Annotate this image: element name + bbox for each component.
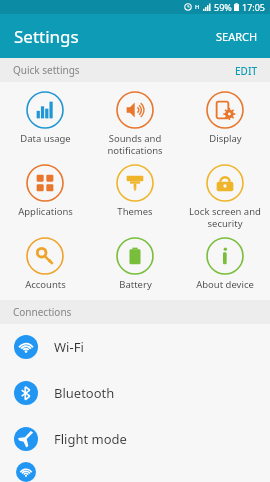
button[interactable]: Flight mode [0, 416, 270, 462]
button[interactable]: Data usage [0, 87, 90, 149]
button[interactable]: SEARCH [204, 17, 270, 56]
button[interactable]: Lock screen and security [180, 160, 270, 233]
button[interactable]: About device [180, 233, 270, 295]
button[interactable]: EDIT [223, 58, 270, 82]
staticText: EDIT [235, 64, 258, 76]
staticText: SEARCH [216, 29, 258, 44]
button[interactable]: Themes [90, 160, 180, 222]
button[interactable]: Wi-Fi [0, 324, 270, 370]
staticText: Display [209, 132, 242, 145]
staticText: 17:05 [242, 1, 266, 13]
staticText: About device [196, 278, 254, 291]
button[interactable]: Battery [90, 233, 180, 295]
staticText: Themes [117, 205, 153, 218]
staticText: Quick settings [13, 63, 80, 77]
staticText: Sounds and notifications [107, 132, 163, 156]
button[interactable]: Sounds and notifications [90, 87, 180, 160]
staticText: Settings [14, 25, 79, 48]
staticText: Connections [13, 305, 72, 319]
staticText: Data usage [20, 132, 71, 145]
button[interactable]: Bluetooth [0, 370, 270, 416]
staticText: 59% [214, 1, 232, 13]
staticText: Wi-Fi [54, 338, 84, 356]
button[interactable]: Display [180, 87, 270, 149]
button[interactable]: Accounts [0, 233, 90, 295]
staticText: Battery [119, 278, 152, 291]
staticText: Flight mode [54, 430, 127, 448]
staticText: Bluetooth [54, 384, 115, 402]
staticText: H [195, 3, 200, 11]
button[interactable]: Applications [0, 160, 90, 222]
staticText: Accounts [25, 278, 66, 291]
button[interactable]: Setting [0, 462, 270, 482]
staticText: Lock screen and security [189, 205, 261, 229]
staticText: Applications [18, 205, 73, 218]
